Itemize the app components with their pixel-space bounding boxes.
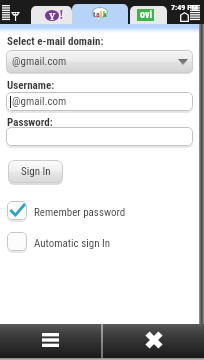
button[interactable]: Remember password [7,201,126,223]
button[interactable]: Automatic sign In [7,232,111,254]
staticText: k [103,10,107,19]
staticText: Y [49,10,56,21]
staticText: ovi [140,9,152,21]
staticText: Username: [7,79,55,92]
button[interactable]: Tab [31,6,72,24]
button[interactable]: Menu [0,324,101,358]
staticText: ! [59,6,64,22]
staticText: Automatic sign In [34,237,111,250]
button[interactable]: @gmail.com [6,92,193,111]
button[interactable] [6,127,193,146]
button[interactable]: Sign In [8,160,63,183]
staticText: @gmail.com [12,55,67,68]
staticText: Password: [7,116,53,129]
staticText: @gmail.com [12,95,67,108]
button[interactable]: Tab [130,6,167,24]
staticText: Select e-mail domain: [7,35,104,48]
staticText: Sign In [21,165,51,178]
staticText: t [93,10,96,19]
staticText: 7:49 PM [171,3,198,12]
staticText: a [96,10,100,19]
button[interactable]: @gmail.com [6,50,193,73]
staticText: l [100,10,103,19]
button[interactable]: Tab [72,4,128,24]
staticText: Remember password [34,206,126,219]
button[interactable]: Close [103,324,204,358]
